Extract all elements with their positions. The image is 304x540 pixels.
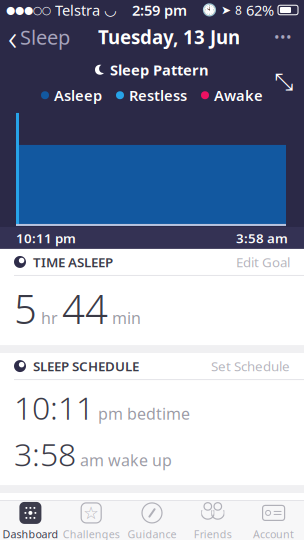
- staticText: •••: [274, 27, 292, 47]
- staticText: 5: [14, 282, 37, 335]
- button[interactable]: More options: [262, 20, 304, 54]
- staticText: SLEEP SCHEDULE: [33, 357, 139, 375]
- staticText: 2:59 pm: [132, 0, 187, 20]
- button[interactable]: Expand chart: [270, 68, 298, 96]
- staticText: 🕙: [202, 3, 217, 17]
- staticText: Learn More: [218, 497, 290, 515]
- staticText: 3:58 am: [236, 229, 288, 247]
- staticText: Edit Goal: [236, 253, 290, 271]
- button[interactable]: ‹: [0, 20, 76, 54]
- staticText: 44: [62, 282, 108, 335]
- staticText: hr: [37, 307, 62, 328]
- staticText: Sleep: [20, 24, 70, 50]
- staticText: 10:11 pm: [16, 229, 76, 247]
- staticText: Friends: [194, 527, 232, 540]
- staticText: Dashboard: [2, 527, 58, 540]
- staticText: 3:58: [14, 433, 76, 475]
- staticText: ➤: [221, 3, 231, 17]
- button[interactable]: Edit Goal: [236, 253, 290, 271]
- staticText: Account: [253, 527, 294, 540]
- staticText: TIME ASLEEP: [33, 253, 113, 271]
- staticText: ⤡: [274, 71, 293, 94]
- staticText: 62%: [246, 0, 274, 20]
- staticText: am wake up: [76, 449, 172, 471]
- staticText: Restless: [129, 85, 187, 105]
- button[interactable]: Friends: [182, 497, 243, 540]
- staticText: ‹: [8, 14, 17, 60]
- button[interactable]: Learn More: [218, 497, 290, 515]
- staticText: Asleep: [54, 85, 102, 105]
- button[interactable]: ☆: [61, 497, 122, 540]
- staticText: Set Schedule: [211, 357, 290, 375]
- staticText: min: [108, 307, 141, 328]
- staticText: 8: [235, 2, 242, 18]
- staticText: 10:11: [14, 386, 94, 429]
- button[interactable]: Account: [243, 497, 304, 540]
- staticText: ◡: [104, 2, 117, 18]
- staticText: 0: [14, 526, 32, 540]
- staticText: Sleep Pattern: [110, 60, 209, 79]
- staticText: Tuesday, 13 Jun: [98, 25, 240, 49]
- staticText: Telstra: [55, 0, 100, 20]
- staticText: Guidance: [127, 527, 176, 540]
- button[interactable]: Set Schedule: [211, 357, 290, 375]
- staticText: SLEEP QUALITY: [33, 497, 129, 515]
- button[interactable]: Guidance: [122, 497, 182, 540]
- staticText: ☆: [83, 503, 99, 523]
- staticText: Awake: [214, 85, 263, 105]
- staticText: ●●●○○: [6, 4, 51, 16]
- button[interactable]: Dashboard: [0, 497, 61, 540]
- staticText: pm bedtime: [94, 403, 190, 424]
- staticText: Challenges: [63, 527, 120, 540]
